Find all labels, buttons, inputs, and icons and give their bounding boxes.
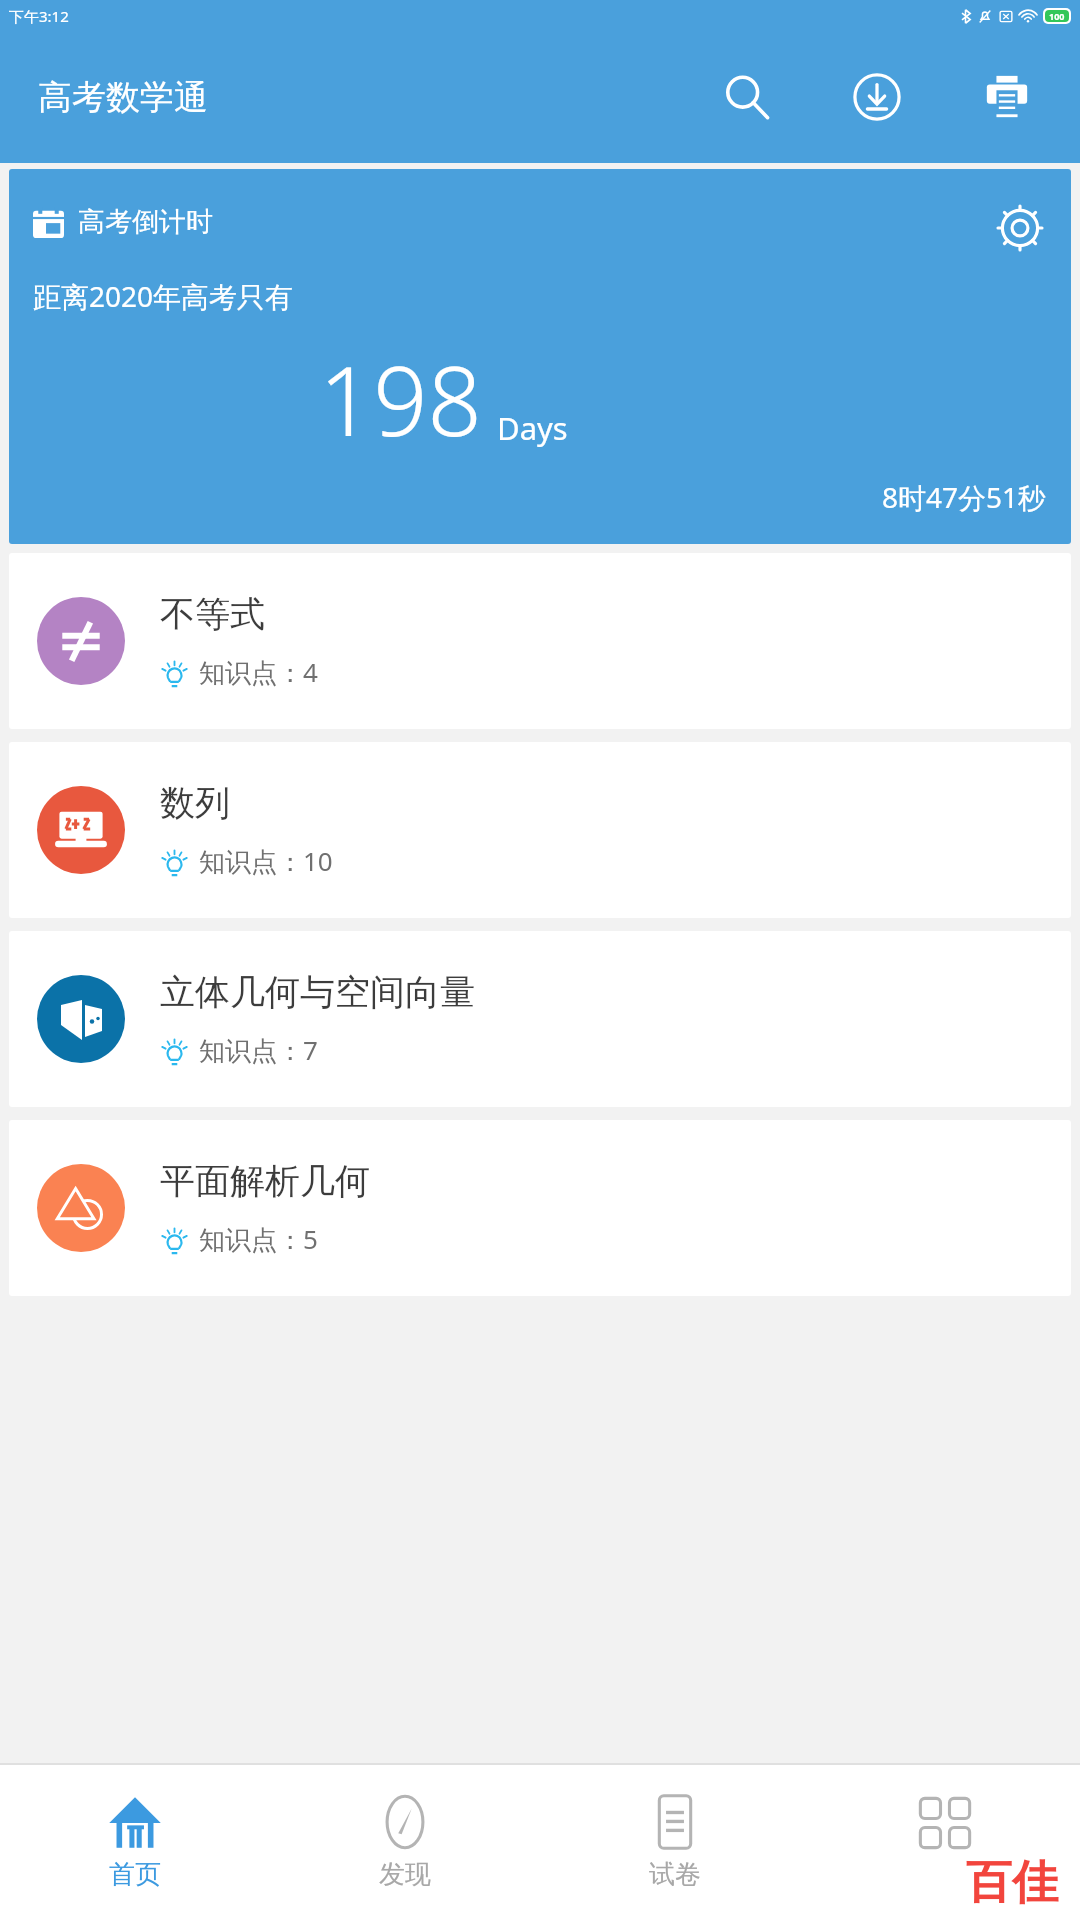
button[interactable]: Print: [976, 66, 1038, 128]
staticText: 知识点：5: [199, 1221, 318, 1257]
button[interactable]: 发现: [270, 1764, 540, 1920]
staticText: 立体几何与空间向量: [160, 970, 475, 1014]
button[interactable]: 平面解析几何: [9, 1120, 1071, 1296]
staticText: 高考数学通: [38, 76, 208, 119]
staticText: 发现: [379, 1858, 431, 1891]
button[interactable]: 立体几何与空间向量: [9, 931, 1071, 1107]
button[interactable]: Download: [846, 66, 908, 128]
staticText: 下午3:12: [9, 6, 69, 26]
staticText: Days: [497, 407, 568, 449]
button[interactable]: 首页: [0, 1764, 270, 1920]
staticText: 百佳: [966, 1854, 1058, 1912]
button[interactable]: More: [810, 1764, 1080, 1920]
staticText: 8时47分51秒: [882, 478, 1047, 516]
button[interactable]: 试卷: [540, 1764, 810, 1920]
staticText: 不等式: [160, 592, 265, 636]
button[interactable]: 高考倒计时: [9, 169, 1071, 544]
staticText: 距离2020年高考只有: [33, 277, 294, 315]
staticText: 知识点：10: [199, 843, 333, 879]
staticText: 平面解析几何: [160, 1159, 370, 1203]
staticText: 100: [1049, 10, 1065, 22]
button[interactable]: 数列: [9, 742, 1071, 918]
staticText: 首页: [109, 1858, 161, 1891]
staticText: 知识点：4: [199, 654, 318, 690]
staticText: 数列: [160, 781, 230, 825]
button[interactable]: Settings: [991, 199, 1049, 257]
staticText: 高考倒计时: [78, 205, 213, 239]
button[interactable]: Search: [716, 66, 778, 128]
staticText: 知识点：7: [199, 1032, 318, 1068]
staticText: 198: [319, 334, 482, 463]
button[interactable]: 不等式: [9, 553, 1071, 729]
staticText: 试卷: [649, 1858, 701, 1891]
